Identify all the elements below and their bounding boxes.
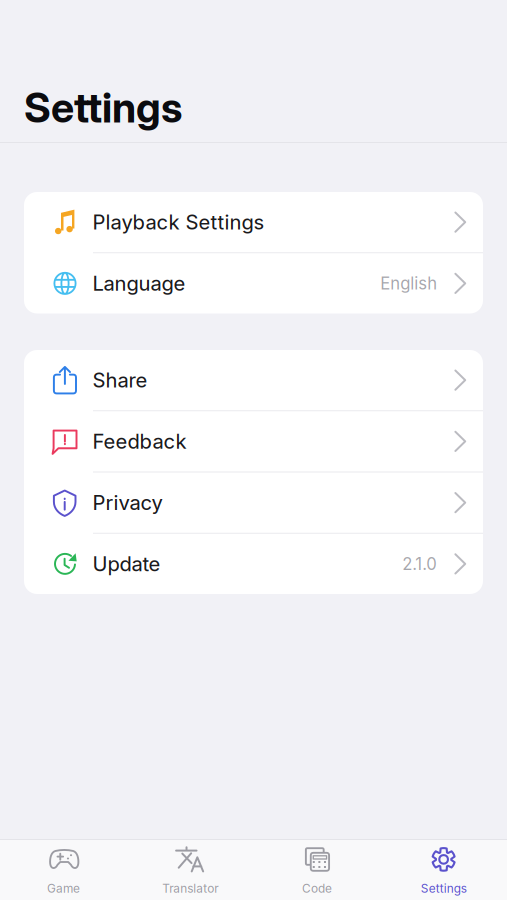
button[interactable]: Privacy <box>24 472 483 533</box>
button[interactable]: Settings <box>380 840 507 900</box>
staticText: Settings <box>421 881 467 895</box>
staticText: Playback Settings <box>92 210 264 234</box>
staticText: Feedback <box>92 429 186 453</box>
staticText: Privacy <box>92 491 162 514</box>
staticText: Translator <box>162 881 218 895</box>
button[interactable]: Language <box>24 253 483 313</box>
button[interactable]: Translator <box>127 840 254 900</box>
staticText: 2.1.0 <box>402 554 437 574</box>
staticText: Settings <box>24 83 182 132</box>
button[interactable]: Playback Settings <box>24 192 483 252</box>
staticText: Share <box>92 368 147 392</box>
button[interactable]: Update <box>24 534 483 594</box>
button[interactable]: Feedback <box>24 411 483 471</box>
staticText: Update <box>92 552 160 576</box>
staticText: English <box>380 273 437 293</box>
button[interactable]: Code <box>253 840 380 900</box>
button[interactable]: Share <box>24 350 483 410</box>
button[interactable]: Game <box>0 840 127 900</box>
staticText: Game <box>47 881 80 895</box>
staticText: Language <box>92 271 185 295</box>
staticText: Code <box>302 881 332 895</box>
